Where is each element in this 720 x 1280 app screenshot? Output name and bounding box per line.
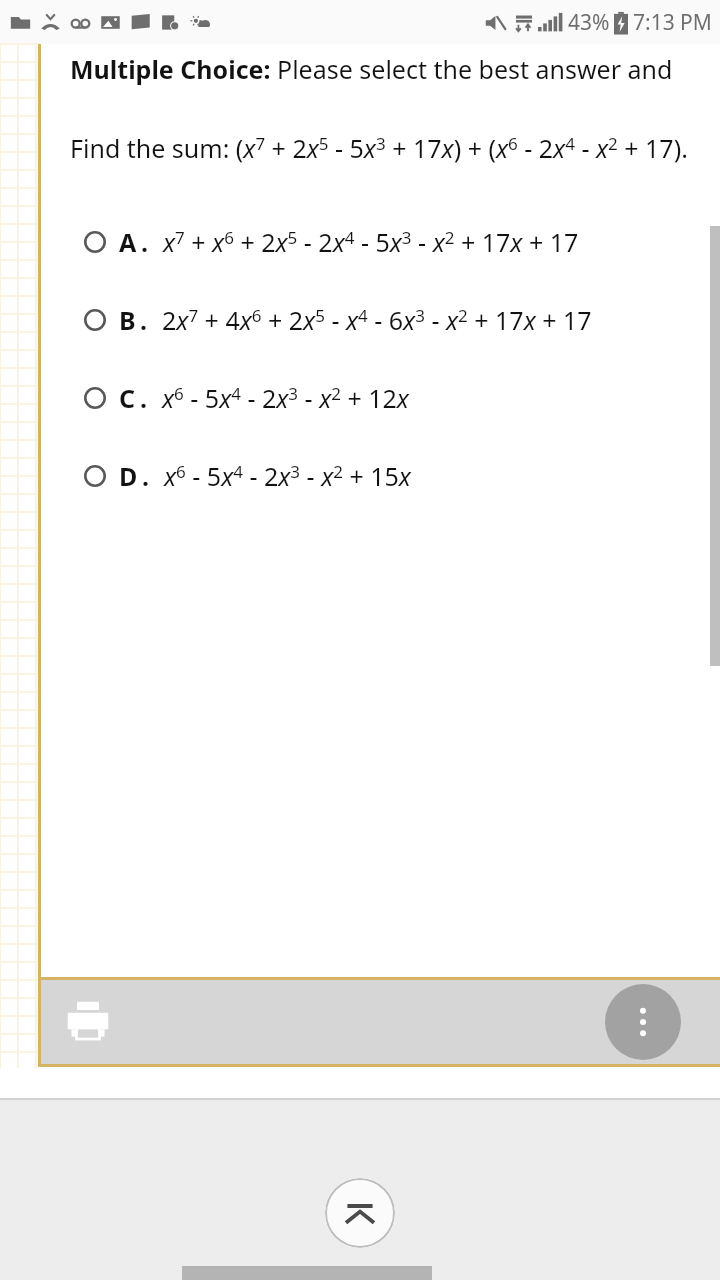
staticText: Find the sum: (x7 + 2x5 - 5x3 + 17x) + (… (70, 131, 688, 165)
button[interactable]: D (0, 437, 720, 515)
button[interactable]: More options (605, 984, 681, 1060)
staticText: . (141, 225, 149, 259)
staticText: . (140, 381, 148, 415)
staticText: x7 + x6 + 2x5 - 2x4 - 5x3 - x2 + 17x + 1… (163, 225, 579, 259)
staticText: D (119, 459, 138, 493)
button[interactable]: Scroll to top (325, 1178, 395, 1248)
button[interactable]: B (0, 281, 720, 359)
staticText: 7:13 PM (633, 8, 712, 37)
staticText: x6 - 5x4 - 2x3 - x2 + 12x (162, 381, 409, 415)
staticText: Multiple Choice: Please select the best … (70, 52, 720, 86)
staticText: . (142, 459, 150, 493)
staticText: B (119, 303, 136, 337)
button[interactable]: A (0, 203, 720, 281)
staticText: A (119, 225, 137, 259)
staticText: C (119, 381, 136, 415)
staticText: 43% (568, 8, 610, 37)
staticText: x6 - 5x4 - 2x3 - x2 + 15x (164, 459, 411, 493)
button[interactable]: Print (59, 993, 117, 1051)
staticText: 2x7 + 4x6 + 2x5 - x4 - 6x3 - x2 + 17x + … (162, 303, 592, 337)
staticText: . (140, 303, 148, 337)
button[interactable]: C (0, 359, 720, 437)
